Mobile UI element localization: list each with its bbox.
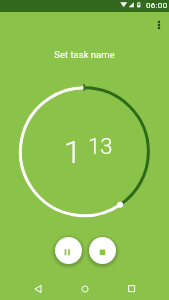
staticText: 06:00 [146,1,168,10]
staticText: 1 [64,134,82,170]
button[interactable]: Pause [51,233,86,268]
button[interactable]: Recents [121,278,142,299]
button[interactable]: Set task name [0,49,169,60]
button[interactable]: Back [27,278,48,299]
button[interactable]: Stop [85,233,120,268]
button[interactable]: Home [74,278,95,299]
staticText: 13 [88,134,113,160]
button[interactable]: More options [147,13,169,37]
